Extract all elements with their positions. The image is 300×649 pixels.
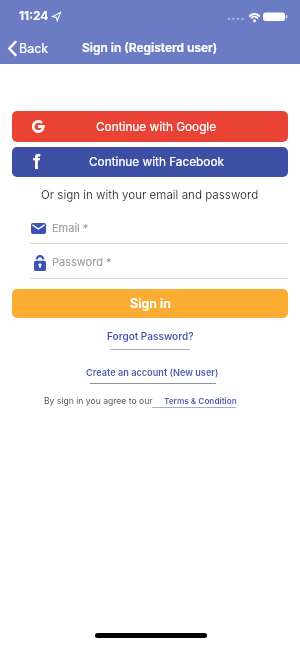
staticText: Sign in (Registerd user) <box>82 40 218 55</box>
staticText: Continue with Google <box>96 120 217 134</box>
staticText: Back <box>19 41 49 56</box>
button[interactable]: Back <box>4 36 49 60</box>
button[interactable]: Create an account (New user) <box>84 367 217 378</box>
button[interactable]: Email * <box>24 214 288 243</box>
staticText: 11:24 <box>19 8 49 23</box>
button[interactable]: Sign in <box>12 289 288 318</box>
staticText: Email * <box>52 221 89 234</box>
staticText: Forgot Password? <box>107 330 194 342</box>
button[interactable]: Password * <box>24 248 288 278</box>
staticText: Continue with Facebook <box>89 155 224 169</box>
staticText: Or sign in with your email and password <box>41 188 259 202</box>
staticText: Create an account (New user) <box>86 367 219 378</box>
staticText: f <box>33 151 41 174</box>
button[interactable]: Continue with Google <box>12 111 288 142</box>
staticText: Sign in <box>130 296 171 311</box>
button[interactable]: f <box>12 147 288 177</box>
button[interactable]: Terms & Condition <box>150 393 240 411</box>
staticText: Terms & Condition <box>164 396 237 406</box>
staticText: By sign in you agree to our <box>44 396 153 406</box>
button[interactable]: Forgot Password? <box>107 330 194 342</box>
staticText: Password * <box>52 255 112 268</box>
